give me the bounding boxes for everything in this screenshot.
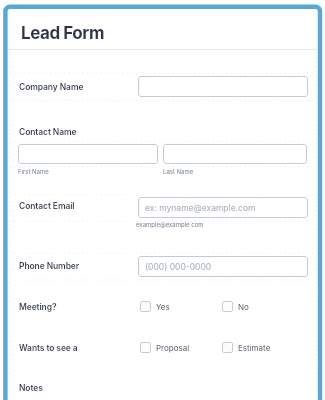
staticText: Wants to see a bbox=[19, 343, 78, 353]
staticText: Notes bbox=[19, 383, 43, 393]
staticText: Contact Email bbox=[19, 201, 75, 211]
button[interactable]: Yes bbox=[140, 301, 170, 312]
staticText: Contact Name bbox=[19, 127, 77, 137]
button[interactable] bbox=[18, 144, 158, 164]
button[interactable]: (000) 000-0000 bbox=[138, 256, 308, 277]
staticText: Phone Number bbox=[19, 261, 80, 271]
button[interactable] bbox=[163, 144, 307, 164]
staticText: Last Name bbox=[163, 168, 194, 175]
staticText: Meeting? bbox=[19, 302, 57, 312]
staticText: Yes bbox=[156, 302, 170, 312]
staticText: Estimate bbox=[238, 343, 271, 353]
button[interactable]: Proposal bbox=[140, 342, 190, 353]
button[interactable]: Estimate bbox=[222, 342, 271, 353]
button[interactable]: ex: myname@example.com bbox=[138, 197, 308, 218]
staticText: Company Name bbox=[19, 82, 84, 92]
staticText: example@example.com bbox=[136, 221, 204, 228]
staticText: No bbox=[238, 302, 249, 312]
staticText: Lead Form bbox=[21, 23, 104, 44]
staticText: First Name bbox=[18, 168, 49, 175]
staticText: (000) 000-0000 bbox=[145, 262, 212, 272]
button[interactable] bbox=[138, 76, 308, 97]
button[interactable]: No bbox=[222, 301, 249, 312]
staticText: Proposal bbox=[156, 343, 190, 353]
staticText: ex: myname@example.com bbox=[145, 203, 256, 213]
